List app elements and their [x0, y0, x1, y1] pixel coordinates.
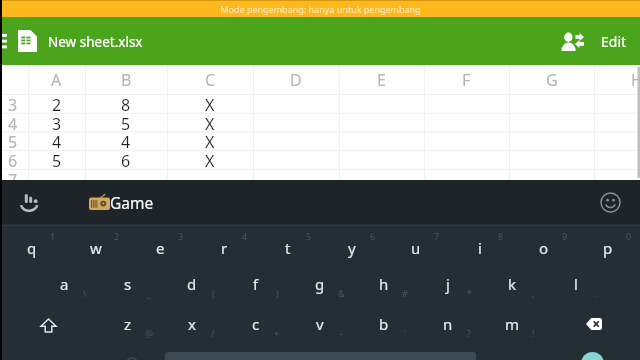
staticText: . [596, 287, 599, 299]
staticText: m [505, 314, 520, 334]
staticText: F [462, 69, 471, 91]
staticText: a [60, 274, 69, 294]
staticText: 8 [498, 230, 504, 242]
button[interactable]: h [352, 264, 416, 304]
button[interactable]: Enter [581, 352, 604, 360]
button[interactable]: Edit [592, 17, 636, 65]
staticText: + [274, 327, 280, 339]
staticText: D [290, 69, 302, 91]
staticText: B [121, 69, 132, 91]
staticText: 6 [121, 150, 131, 169]
staticText: s [124, 274, 132, 294]
staticText: y [348, 238, 356, 258]
button[interactable]: v [288, 304, 352, 344]
button[interactable]: m [480, 304, 544, 344]
staticText: d [187, 274, 197, 294]
staticText: H [631, 69, 640, 91]
button[interactable]: b [352, 304, 416, 344]
staticText: f [253, 274, 259, 294]
staticText: o [539, 238, 549, 258]
staticText: 7 [8, 169, 18, 188]
staticText: 6 [8, 150, 18, 169]
button[interactable]: Game [89, 180, 154, 224]
button[interactable]: k [480, 264, 544, 304]
button[interactable]: Emoji [588, 180, 632, 224]
button[interactable]: q [0, 228, 64, 268]
staticText: u [411, 238, 421, 258]
staticText: # [402, 287, 408, 299]
staticText: 2 [114, 230, 120, 242]
button[interactable]: y [320, 228, 384, 268]
staticText: @ [145, 327, 154, 339]
staticText: h [379, 274, 389, 294]
staticText: G [546, 69, 558, 91]
staticText: 1 [50, 230, 56, 242]
staticText: q [27, 238, 37, 258]
staticText: ' [404, 327, 407, 339]
button[interactable]: s [96, 264, 160, 304]
staticText: l [574, 274, 578, 294]
staticText: 3 [52, 113, 62, 132]
staticText: 0 [626, 230, 632, 242]
button[interactable]: t [256, 228, 320, 268]
staticText: w [90, 238, 102, 258]
button[interactable]: p [576, 228, 640, 268]
button[interactable]: r [192, 228, 256, 268]
staticText: c [252, 314, 260, 334]
staticText: Mode pengembang: hanya untuk pengembang [220, 3, 421, 15]
staticText: \ [83, 287, 87, 299]
staticText: 5 [8, 131, 18, 150]
button[interactable]: Symbols [110, 344, 154, 360]
button[interactable]: a [32, 264, 96, 304]
button[interactable]: c [224, 304, 288, 344]
staticText: E [377, 69, 386, 91]
button[interactable]: i [448, 228, 512, 268]
staticText: ! [532, 327, 535, 339]
button[interactable]: Share [552, 17, 592, 65]
staticText: 4 [8, 113, 18, 132]
staticText: - [340, 327, 343, 339]
staticText: 6 [370, 230, 376, 242]
button[interactable]: w [64, 228, 128, 268]
staticText: i [478, 238, 482, 258]
button[interactable]: Backspace [562, 304, 626, 344]
staticText: 8 [121, 94, 131, 113]
button[interactable]: z [96, 304, 160, 344]
staticText: z [124, 314, 132, 334]
staticText: _ [147, 287, 151, 299]
button[interactable]: o [512, 228, 576, 268]
staticText: 4 [121, 131, 131, 150]
staticText: / [211, 327, 215, 339]
button[interactable]: f [224, 264, 288, 304]
button[interactable]: x [160, 304, 224, 344]
button[interactable]: d [160, 264, 224, 304]
staticText: & [338, 287, 345, 299]
button[interactable]: Navigation menu [0, 17, 11, 65]
button[interactable]: n [416, 304, 480, 344]
button[interactable]: e [128, 228, 192, 268]
button[interactable]: Keyboard menu [8, 180, 52, 224]
staticText: 4 [242, 230, 248, 242]
staticText: 2 [52, 94, 62, 113]
staticText: k [508, 274, 517, 294]
button[interactable]: Shift [16, 305, 80, 345]
staticText: C [205, 69, 216, 91]
staticText: A [51, 69, 62, 91]
staticText: t [285, 238, 291, 258]
staticText: , [532, 287, 535, 299]
staticText: r [221, 238, 228, 258]
button[interactable]: j [416, 264, 480, 304]
button[interactable]: g [288, 264, 352, 304]
staticText: 4 [52, 131, 62, 150]
staticText: 7 [434, 230, 440, 242]
staticText: 5 [306, 230, 312, 242]
staticText: 3 [8, 94, 18, 113]
staticText: 5 [52, 150, 62, 169]
button[interactable]: u [384, 228, 448, 268]
staticText: 5 [121, 113, 131, 132]
staticText: ) [276, 287, 279, 299]
button[interactable]: l [544, 264, 608, 304]
staticText: 9 [562, 230, 568, 242]
staticText: b [379, 314, 389, 334]
